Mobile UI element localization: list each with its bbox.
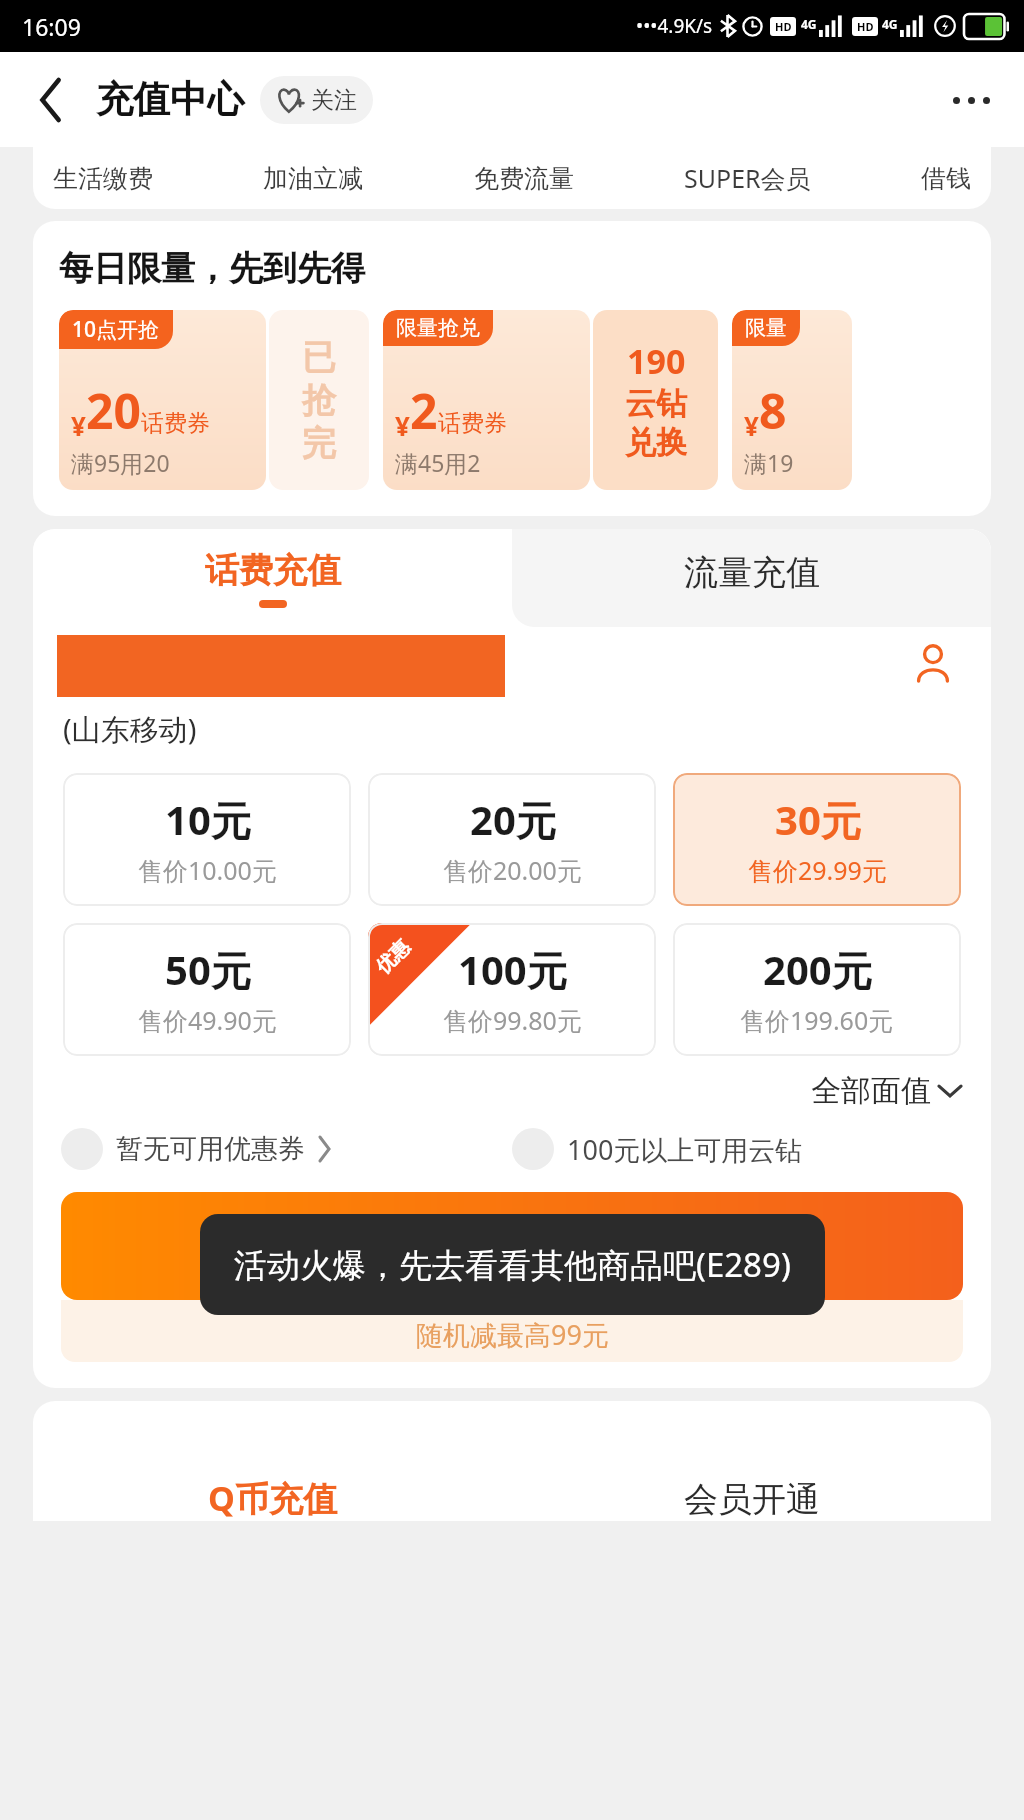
staticText: (山东移动) <box>63 709 197 749</box>
staticText: 16:09 <box>22 11 81 42</box>
button[interactable]: 流量充值 <box>512 529 991 627</box>
staticText: 每日限量，先到先得 <box>59 247 365 290</box>
staticText: 4G <box>882 16 898 32</box>
staticText: 借钱 <box>921 163 971 194</box>
button[interactable]: 100元以上可用云钻 <box>512 1128 963 1170</box>
staticText: 优惠 <box>371 935 415 979</box>
button[interactable]: 免费流量 <box>468 157 580 200</box>
staticText: 10点开抢 <box>72 315 160 344</box>
staticText: 关注 <box>311 86 357 115</box>
button[interactable]: 借钱 <box>915 157 977 200</box>
staticText: 20 <box>86 378 141 443</box>
staticText: 20元 <box>470 792 556 847</box>
staticText: HD <box>775 19 792 34</box>
button[interactable]: 会员开通 <box>512 1401 991 1521</box>
staticText: 满45用2 <box>395 447 481 478</box>
staticText: Q币充值 <box>208 1475 337 1521</box>
staticText: 限量 <box>745 315 787 341</box>
button[interactable]: 生活缴费 <box>47 157 159 200</box>
button[interactable]: 优惠 <box>368 923 656 1056</box>
staticText: 暂无可用优惠券 <box>116 1132 305 1166</box>
staticText: •••4.9K/s <box>636 13 713 39</box>
staticText: 云钻 <box>625 384 687 423</box>
staticText: 加油立减 <box>263 163 363 194</box>
button[interactable]: 加油立减 <box>257 157 369 200</box>
staticText: 生活缴费 <box>53 163 153 194</box>
staticText: ¥29.99 立即充值 <box>379 1222 646 1271</box>
staticText: 售价199.60元 <box>740 1003 894 1037</box>
staticText: ¥ <box>744 408 759 443</box>
staticText: 30元 <box>775 792 861 847</box>
staticText: 话费券 <box>141 409 210 438</box>
button[interactable]: 限量 <box>732 310 852 490</box>
staticText: 抢 <box>302 379 336 422</box>
staticText: ¥ <box>71 408 86 443</box>
staticText: 50元 <box>165 942 251 997</box>
staticText: 售价10.00元 <box>138 853 277 887</box>
staticText: 已 <box>302 336 336 379</box>
button[interactable]: 190 <box>593 310 718 490</box>
staticText: 售价20.00元 <box>443 853 582 887</box>
button[interactable]: Back <box>22 71 80 129</box>
staticText: SUPER会员 <box>684 161 811 195</box>
staticText: HD <box>857 19 874 34</box>
staticText: 售价29.99元 <box>748 853 887 887</box>
staticText: 10元 <box>165 792 251 847</box>
staticText: 免费流量 <box>474 163 574 194</box>
button[interactable]: 已 <box>269 310 369 490</box>
staticText: 售价99.80元 <box>443 1003 582 1037</box>
button[interactable]: 10元 <box>63 773 351 906</box>
staticText: 限量抢兑 <box>396 315 480 341</box>
button[interactable]: 关注 <box>260 76 373 124</box>
staticText: 售价49.90元 <box>138 1003 277 1037</box>
staticText: 190 <box>627 338 686 384</box>
staticText: 流量充值 <box>684 551 820 594</box>
button[interactable]: 话费充值 <box>33 529 512 627</box>
staticText: 满95用20 <box>71 447 170 478</box>
button[interactable]: 10点开抢 <box>59 310 266 490</box>
staticText: 8 <box>759 378 787 443</box>
button[interactable]: 全部面值 <box>33 1072 961 1110</box>
staticText: 全部面值 <box>811 1072 931 1110</box>
staticText: 100元 <box>458 942 567 997</box>
staticText: 4G <box>801 16 817 32</box>
staticText: 兑换 <box>625 423 687 462</box>
button[interactable]: ¥29.99 立即充值 <box>61 1192 963 1300</box>
staticText: 完 <box>302 422 336 465</box>
staticText: 活动火爆，先去看看其他商品吧(E289) <box>234 1242 791 1287</box>
staticText: ¥ <box>395 408 410 443</box>
button[interactable]: Q币充值 <box>33 1401 512 1521</box>
button[interactable]: Contacts <box>905 635 961 691</box>
button[interactable]: More options <box>940 69 1002 131</box>
staticText: 100元以上可用云钻 <box>567 1131 803 1168</box>
button[interactable]: 20元 <box>368 773 656 906</box>
staticText: 2 <box>410 378 438 443</box>
button[interactable]: 200元 <box>673 923 961 1056</box>
staticText: 话费券 <box>438 409 507 438</box>
staticText: 200元 <box>763 942 872 997</box>
staticText: 话费充值 <box>205 549 341 592</box>
button[interactable]: SUPER会员 <box>678 155 817 201</box>
staticText: 满19 <box>744 447 794 478</box>
button[interactable]: 50元 <box>63 923 351 1056</box>
staticText: 随机减最高99元 <box>416 1316 609 1353</box>
button[interactable]: 暂无可用优惠券 <box>61 1128 512 1170</box>
staticText: 会员开通 <box>684 1478 820 1521</box>
staticText: 充值中心 <box>96 76 244 123</box>
button[interactable]: 限量抢兑 <box>383 310 590 490</box>
button[interactable]: 30元 <box>673 773 961 906</box>
